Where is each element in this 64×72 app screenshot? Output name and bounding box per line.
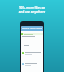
staticText: Recent documents (22, 27, 43, 30)
staticText: 100+ more files on (1, 6, 63, 10)
button[interactable]: Recent documents (21, 26, 43, 31)
staticText: and use anywhere (1, 10, 63, 14)
button[interactable] (21, 45, 43, 46)
button[interactable] (21, 51, 43, 55)
button[interactable] (21, 36, 43, 37)
button[interactable] (21, 33, 43, 35)
button[interactable] (21, 62, 43, 66)
